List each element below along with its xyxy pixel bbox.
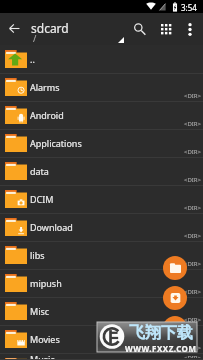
staticText: Applications xyxy=(30,137,82,149)
button[interactable]: Android xyxy=(0,102,203,130)
staticText: sdcard xyxy=(31,20,69,36)
staticText: <DIR> xyxy=(184,288,202,296)
staticText: <DIR> xyxy=(184,344,202,352)
staticText: / xyxy=(33,32,37,44)
button[interactable]: Misc xyxy=(0,298,203,326)
staticText: <DIR> xyxy=(184,148,202,156)
button[interactable]: Back xyxy=(4,18,25,39)
staticText: 3:54 xyxy=(181,2,197,13)
staticText: <DIR> xyxy=(184,120,202,128)
staticText: WWW.FXXZ.COM xyxy=(125,343,197,354)
staticText: <DIR> xyxy=(184,260,202,268)
button[interactable]: Alarms xyxy=(0,74,203,102)
button[interactable]: mipush xyxy=(0,270,203,298)
staticText: 飞翔下载 xyxy=(129,323,193,343)
button[interactable]: Applications xyxy=(0,130,203,158)
staticText: <DIR> xyxy=(184,176,202,184)
button[interactable]: More options xyxy=(180,19,200,39)
staticText: <DIR> xyxy=(184,232,202,240)
button[interactable]: libs xyxy=(0,242,203,270)
button[interactable]: .. xyxy=(0,46,203,74)
button[interactable]: New folder xyxy=(163,256,187,280)
button[interactable]: Extract archive xyxy=(163,286,187,310)
staticText: <DIR> xyxy=(184,204,202,212)
button[interactable]: Add xyxy=(163,316,187,340)
staticText: <DIR> xyxy=(184,92,202,100)
button[interactable]: Music xyxy=(0,354,203,360)
staticText: <DIR> xyxy=(184,354,202,358)
staticText: .. xyxy=(30,53,35,65)
button[interactable]: Download xyxy=(0,214,203,242)
button[interactable]: Grid view xyxy=(161,24,172,35)
staticText: Movies xyxy=(30,333,60,345)
staticText: <DIR> xyxy=(184,316,202,324)
staticText: libs xyxy=(30,249,45,261)
staticText: Music xyxy=(30,353,55,359)
button[interactable]: data xyxy=(0,158,203,186)
button[interactable]: DCIM xyxy=(0,186,203,214)
staticText: Download xyxy=(30,221,73,233)
button[interactable]: Movies xyxy=(0,326,203,354)
staticText: data xyxy=(30,165,49,177)
staticText: Alarms xyxy=(30,81,60,93)
staticText: mipush xyxy=(30,277,62,289)
staticText: DCIM xyxy=(30,193,54,205)
staticText: Android xyxy=(30,109,64,121)
button[interactable]: Search xyxy=(129,18,150,39)
staticText: Misc xyxy=(30,305,50,317)
